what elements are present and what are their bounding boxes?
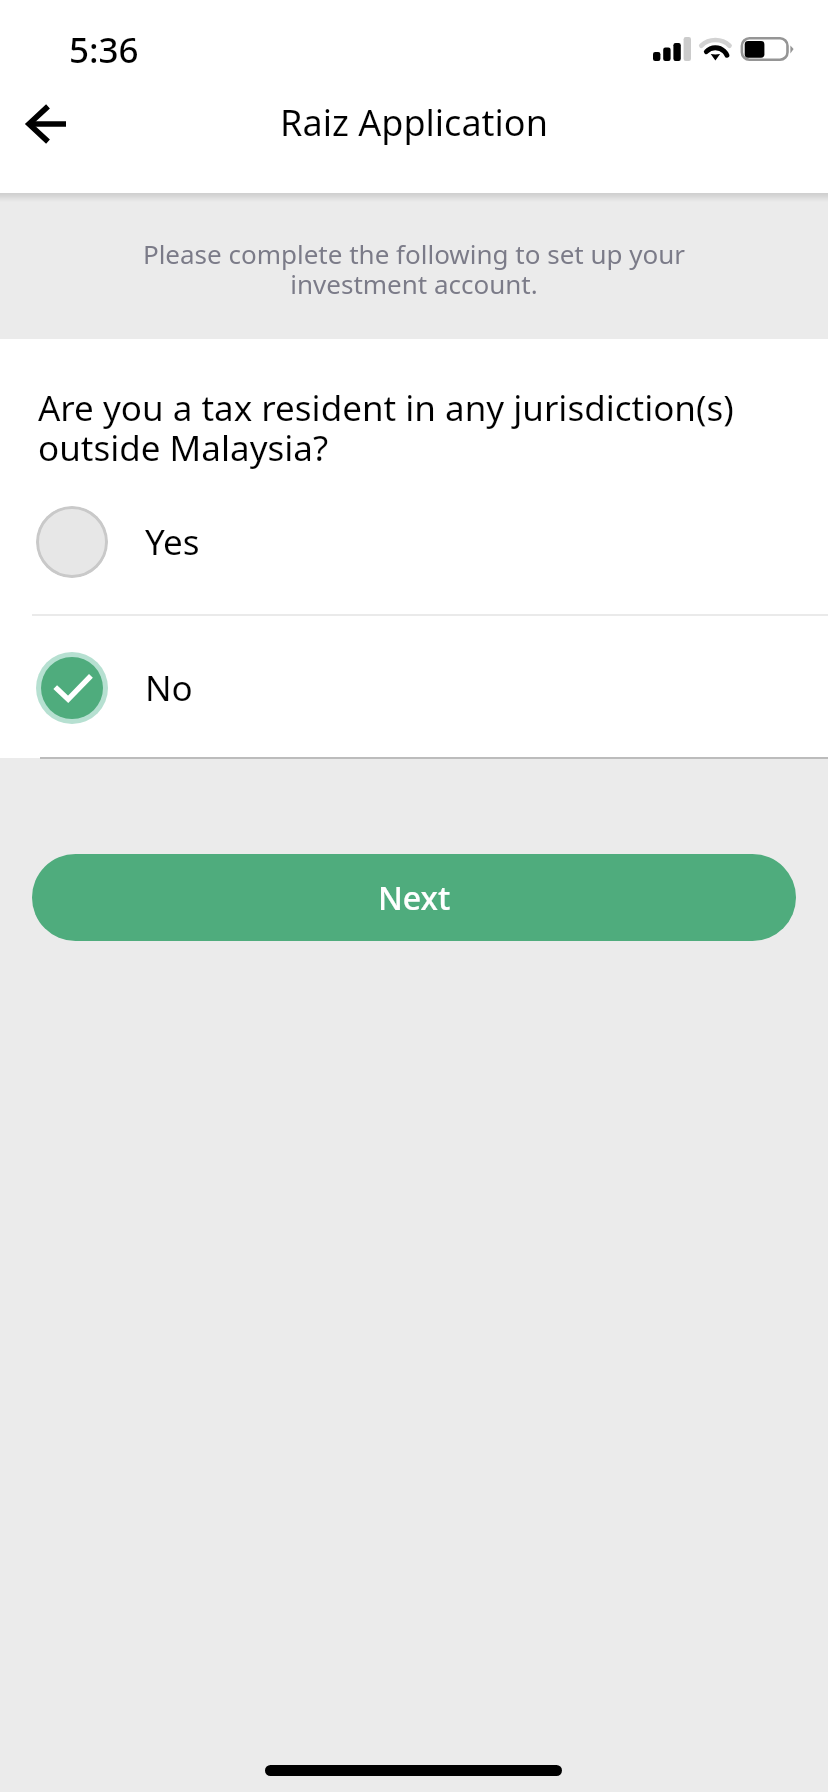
button[interactable]: Next bbox=[32, 854, 796, 941]
staticText: No bbox=[145, 664, 193, 712]
button[interactable]: Back bbox=[7, 84, 87, 164]
staticText: Please complete the following to set up … bbox=[136, 236, 692, 302]
staticText: Are you a tax resident in any jurisdicti… bbox=[38, 384, 748, 472]
staticText: Next bbox=[378, 876, 451, 920]
staticText: Raiz Application bbox=[0, 98, 828, 147]
staticText: 5:36 bbox=[69, 26, 139, 74]
staticText: Yes bbox=[145, 518, 200, 566]
button[interactable]: No bbox=[0, 615, 828, 761]
button[interactable]: Yes bbox=[0, 469, 828, 615]
